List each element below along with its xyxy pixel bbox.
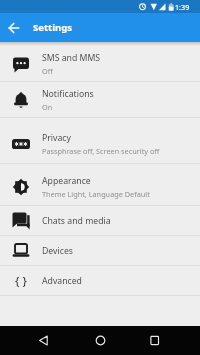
staticText: Theme Light, Language Default — [42, 189, 150, 199]
staticText: Chats and media — [42, 215, 111, 227]
staticText: On — [42, 102, 53, 112]
staticText: Privacy — [42, 132, 71, 144]
button[interactable]: SMS and MMS — [0, 46, 200, 81]
button[interactable]: Devices — [0, 236, 200, 265]
staticText: Advanced — [42, 275, 82, 287]
staticText: Settings — [33, 21, 72, 34]
button[interactable]: Privacy — [0, 118, 200, 163]
staticText: Notifications — [42, 88, 94, 100]
staticText: 1:39 — [175, 2, 190, 12]
button[interactable]: Settings — [0, 13, 200, 42]
staticText: Off — [42, 66, 53, 76]
staticText: Appearance — [42, 175, 91, 187]
button[interactable] — [0, 326, 66, 355]
button[interactable]: Chats and media — [0, 206, 200, 235]
staticText: Devices — [42, 245, 73, 257]
button[interactable]: Notifications — [0, 82, 200, 117]
staticText: Passphrase off, Screen security off — [42, 146, 160, 156]
button[interactable]: { } — [0, 266, 200, 295]
button[interactable]: Appearance — [0, 164, 200, 205]
button[interactable] — [66, 326, 133, 355]
button[interactable] — [133, 326, 200, 355]
staticText: { } — [15, 273, 27, 289]
button[interactable] — [8, 22, 20, 34]
staticText: SMS and MMS — [42, 52, 101, 64]
